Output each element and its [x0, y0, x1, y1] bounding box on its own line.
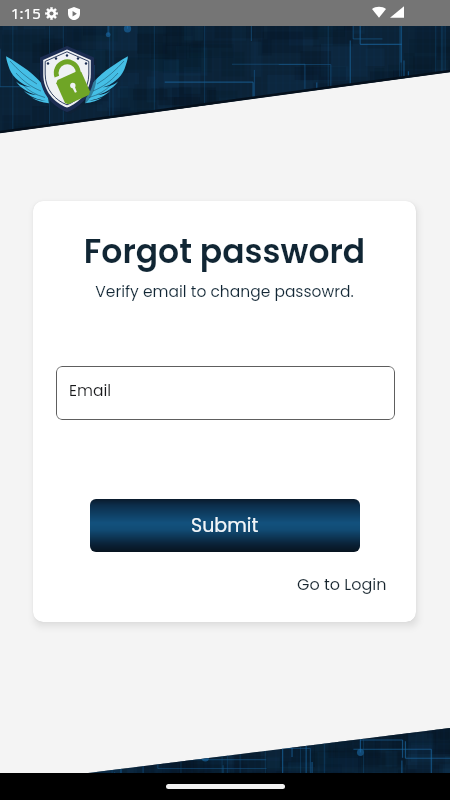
staticText: Email: [69, 380, 112, 402]
staticText: Submit: [191, 512, 259, 539]
staticText: 1:15: [11, 3, 41, 23]
button[interactable]: [166, 784, 285, 789]
staticText: Go to Login: [297, 573, 387, 595]
button[interactable]: Submit: [90, 499, 360, 552]
button[interactable]: Email: [56, 366, 395, 420]
other: Home gesture bar: [0, 773, 450, 800]
staticText: Forgot password: [33, 228, 416, 274]
button[interactable]: Go to Login: [297, 573, 387, 595]
staticText: Verify email to change passowrd.: [33, 281, 416, 303]
